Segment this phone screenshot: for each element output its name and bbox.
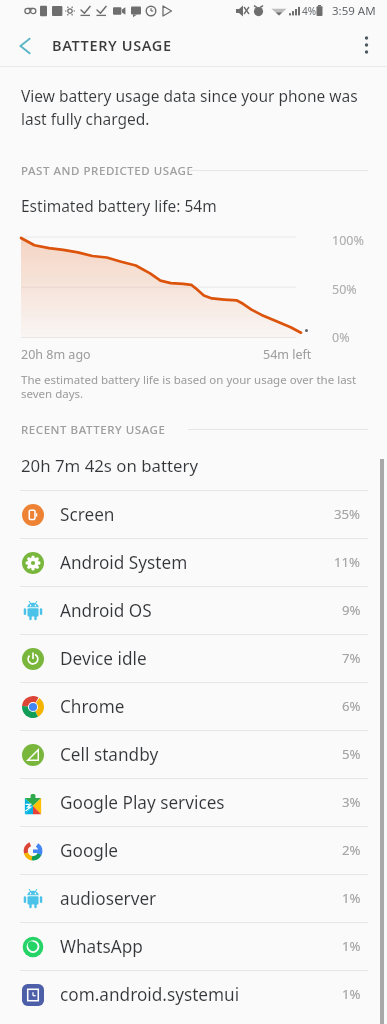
staticText: 4% xyxy=(302,4,317,18)
staticText: RECENT BATTERY USAGE xyxy=(21,422,166,436)
staticText: The estimated battery life is based on y… xyxy=(21,372,367,401)
button[interactable]: Chrome xyxy=(0,683,387,730)
staticText: com.android.systemui xyxy=(60,983,240,1006)
staticText: View battery usage data since your phone… xyxy=(21,85,359,130)
staticText: Screen xyxy=(60,503,115,526)
staticText: Cell standby xyxy=(60,743,159,766)
button[interactable]: Google xyxy=(0,827,387,874)
staticText: 5% xyxy=(342,745,361,763)
staticText: 54m left xyxy=(263,346,312,363)
staticText: Android OS xyxy=(60,599,152,622)
staticText: PAST AND PREDICTED USAGE xyxy=(21,163,194,177)
staticText: Android System xyxy=(60,551,188,574)
button[interactable]: com.android.systemui xyxy=(0,971,387,1018)
button[interactable]: WhatsApp xyxy=(0,923,387,970)
staticText: 1% xyxy=(342,889,361,907)
button[interactable]: Android OS xyxy=(0,587,387,634)
button[interactable]: audioserver xyxy=(0,875,387,922)
staticText: 35% xyxy=(334,505,361,523)
staticText: 0% xyxy=(332,329,350,346)
staticText: Google xyxy=(60,839,119,862)
staticText: 6% xyxy=(342,697,361,715)
staticText: audioserver xyxy=(60,887,157,910)
staticText: Device idle xyxy=(60,647,147,670)
staticText: 1% xyxy=(342,985,361,1003)
staticText: WhatsApp xyxy=(60,935,143,958)
button[interactable]: Device idle xyxy=(0,635,387,682)
button[interactable]: More options xyxy=(345,22,387,67)
button[interactable]: Google Play services xyxy=(0,779,387,826)
staticText: 2% xyxy=(342,841,361,859)
staticText: 3% xyxy=(342,793,361,811)
staticText: Estimated battery life: 54m xyxy=(21,195,217,216)
button[interactable]: Screen xyxy=(0,491,387,538)
staticText: 100% xyxy=(332,232,364,249)
staticText: 7% xyxy=(342,649,361,667)
staticText: 50% xyxy=(332,281,357,298)
staticText: 20h 7m 42s on battery xyxy=(21,454,199,477)
button[interactable]: Cell standby xyxy=(0,731,387,778)
staticText: 11% xyxy=(334,553,361,571)
button[interactable]: Navigate up xyxy=(0,22,44,67)
staticText: 20h 8m ago xyxy=(21,346,91,363)
staticText: BATTERY USAGE xyxy=(52,35,172,55)
staticText: Google Play services xyxy=(60,791,225,814)
staticText: 3:59 AM xyxy=(332,3,376,19)
staticText: 1% xyxy=(342,937,361,955)
staticText: Chrome xyxy=(60,695,125,718)
staticText: 9% xyxy=(342,601,361,619)
button[interactable]: Android System xyxy=(0,539,387,586)
